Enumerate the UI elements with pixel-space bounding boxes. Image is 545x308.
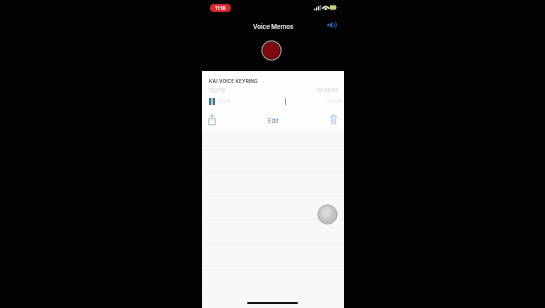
button[interactable]: 11:18 <box>210 4 231 12</box>
button[interactable]: Edit <box>263 116 283 125</box>
staticText: Edit <box>268 117 279 124</box>
staticText: 11:18 <box>215 5 226 11</box>
staticText: KAI VOICE KEYRING <box>209 78 258 84</box>
button[interactable]: Volume <box>327 21 339 29</box>
staticText: 13/7/18 <box>209 87 226 93</box>
staticText: 00:00:04 <box>317 87 338 93</box>
staticText: -00:04 <box>326 99 341 104</box>
button[interactable]: Share <box>208 114 216 125</box>
staticText: Voice Memos <box>253 23 294 31</box>
button[interactable]: Delete <box>330 114 337 124</box>
button[interactable]: Record <box>261 40 282 61</box>
staticText: 00:00 <box>218 99 231 104</box>
button[interactable]: Pause <box>209 98 215 105</box>
button[interactable]: KAI VOICE KEYRING <box>202 72 344 130</box>
